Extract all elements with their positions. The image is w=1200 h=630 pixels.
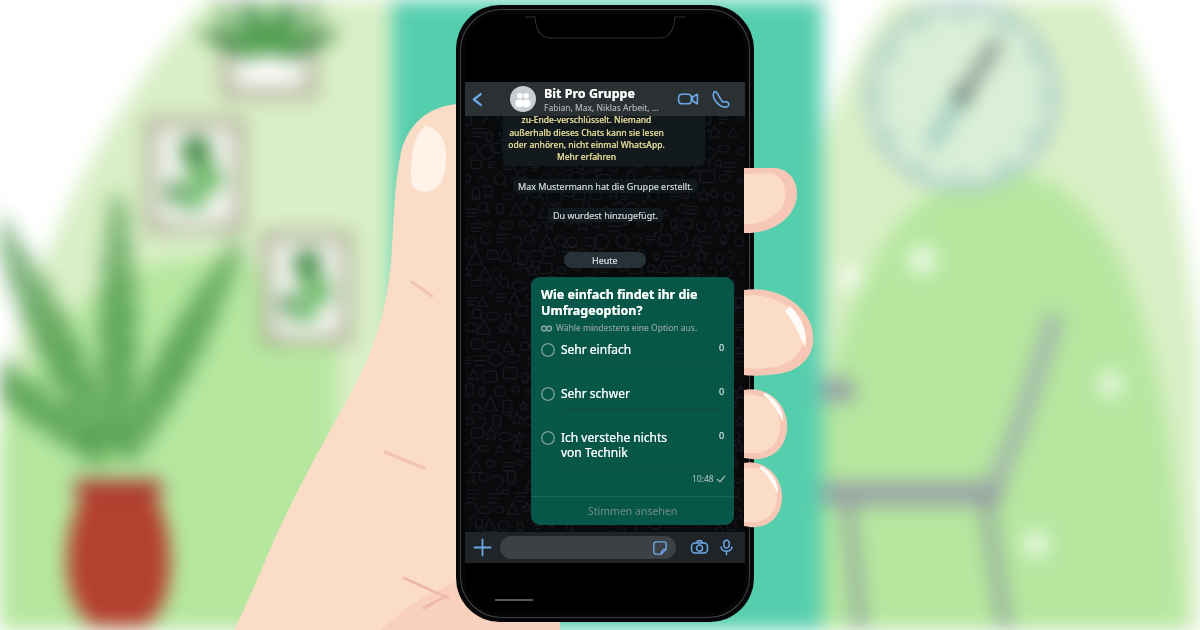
staticText: 0: [719, 429, 725, 441]
staticText: Heute: [592, 254, 618, 266]
staticText: Stimmen ansehen: [588, 504, 678, 518]
staticText: Wähle mindestens eine Option aus.: [556, 322, 698, 334]
button[interactable]: Ich verstehe nichts von Technik: [541, 429, 725, 473]
button[interactable]: Bit Pro Gruppe: [510, 82, 671, 116]
button[interactable]: Sehr schwer: [541, 385, 725, 429]
button[interactable]: Video call: [671, 82, 705, 116]
staticText: 0: [719, 385, 725, 397]
button[interactable]: Camera: [684, 532, 714, 563]
button[interactable]: Voice message: [714, 532, 738, 563]
staticText: zu-Ende-verschlüsselt. Niemand außerhalb…: [508, 114, 665, 162]
button[interactable]: Attach: [465, 532, 500, 563]
staticText: Sehr schwer: [561, 385, 678, 401]
button[interactable]: Voice call: [705, 82, 737, 116]
button[interactable]: [500, 536, 676, 559]
staticText: Bit Pro Gruppe: [544, 85, 635, 102]
button[interactable]: Heute: [592, 254, 618, 266]
staticText: Ich verstehe nichts von Technik: [561, 429, 678, 460]
button[interactable]: Back: [465, 82, 510, 116]
button[interactable]: Sehr einfach: [541, 341, 725, 385]
staticText: Wie einfach findet ihr die Umfrageoption…: [541, 286, 725, 318]
staticText: Fabian, Max, Niklas Arbeit, ...: [544, 102, 659, 114]
staticText: 10:48: [692, 473, 714, 485]
staticText: Sehr einfach: [561, 341, 678, 357]
staticText: Du wurdest hinzugefügt.: [553, 209, 658, 221]
button[interactable]: Stimmen ansehen: [531, 497, 734, 525]
staticText: Max Mustermann hat die Gruppe erstellt.: [518, 180, 693, 192]
staticText: 0: [719, 341, 725, 353]
